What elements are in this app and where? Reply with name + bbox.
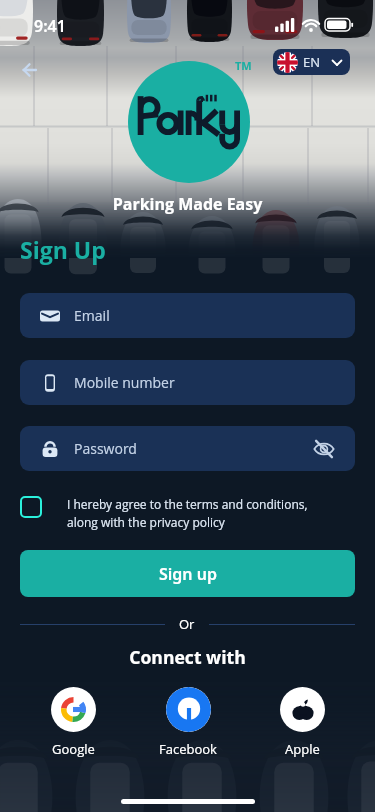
button[interactable]: Email xyxy=(20,293,355,338)
staticText: TM xyxy=(235,58,252,73)
button[interactable]: Facebook xyxy=(159,687,217,758)
button[interactable]: Apple xyxy=(280,687,325,758)
staticText: Parking Made Easy xyxy=(0,193,375,215)
staticText: Connect with xyxy=(0,645,375,669)
button[interactable]: Password xyxy=(20,426,355,471)
other: Show password xyxy=(313,438,335,460)
staticText: Email xyxy=(74,306,110,325)
staticText: Mobile number xyxy=(74,373,175,392)
button[interactable]: Mobile number xyxy=(20,360,355,405)
staticText: I hereby agree to the terms and conditio… xyxy=(67,496,308,531)
button[interactable]: Sign up xyxy=(20,550,355,597)
staticText: Sign Up xyxy=(20,234,106,265)
staticText: Password xyxy=(74,439,137,458)
staticText: 9:41 xyxy=(34,15,66,37)
button[interactable] xyxy=(20,496,42,518)
button[interactable]: Back xyxy=(17,57,43,83)
staticText: EN xyxy=(303,53,321,71)
staticText: Or xyxy=(179,615,195,633)
staticText: Facebook xyxy=(159,740,217,758)
staticText: Google xyxy=(52,740,95,758)
staticText: Sign up xyxy=(159,563,217,585)
button[interactable]: EN xyxy=(273,49,350,75)
button[interactable]: Google xyxy=(51,687,96,758)
staticText: Apple xyxy=(285,740,320,758)
